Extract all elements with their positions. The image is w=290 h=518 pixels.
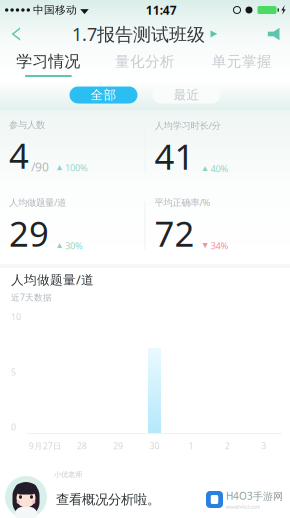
staticText: 小优老师 — [54, 470, 82, 479]
staticText: 40% — [210, 162, 228, 175]
button[interactable]: 全部 — [69, 86, 137, 103]
staticText: 单元掌握 — [212, 52, 272, 71]
staticText: 2 — [225, 440, 230, 452]
staticText: 全部 — [90, 87, 116, 103]
staticText: 中国移动 — [33, 3, 77, 17]
button[interactable]: Back — [0, 20, 32, 48]
staticText: 5 — [11, 366, 16, 378]
staticText: 量化分析 — [115, 52, 175, 71]
staticText: 最近 — [173, 87, 199, 103]
staticText: /90 — [31, 159, 49, 175]
staticText: 29 — [9, 210, 49, 257]
button[interactable]: 最近 — [152, 86, 220, 103]
staticText: 3 — [261, 440, 266, 452]
staticText: 人均学习时长/分 — [154, 119, 220, 132]
button[interactable]: Share — [258, 20, 290, 48]
staticText: 查看概况分析啦。 — [56, 491, 160, 508]
staticText: 0 — [11, 421, 16, 433]
staticText: 30 — [149, 440, 159, 452]
staticText: 100% — [65, 161, 88, 174]
staticText: H4O3手游网 — [226, 489, 283, 503]
staticText: 1.7报告测试班级 — [72, 22, 205, 46]
staticText: 28 — [77, 440, 87, 452]
staticText: 11:47 — [146, 2, 177, 18]
staticText: 41 — [154, 133, 194, 180]
staticText: 4 — [9, 132, 29, 179]
staticText: 平均正确率/% — [154, 196, 210, 209]
staticText: 9月27日 — [29, 440, 62, 452]
staticText: 30% — [65, 239, 83, 252]
staticText: 1 — [188, 440, 193, 452]
button[interactable]: 单元掌握 — [193, 48, 290, 80]
staticText: 人均做题量/道 — [9, 196, 66, 209]
staticText: www.h4o3.com — [226, 504, 260, 510]
staticText: 10 — [11, 311, 21, 323]
staticText: 学习情况 — [16, 51, 80, 72]
button[interactable]: 学习情况 — [0, 48, 97, 80]
staticText: 参与人数 — [9, 119, 45, 131]
staticText: 近7天数据 — [11, 291, 52, 303]
staticText: 人均做题量/道 — [11, 271, 94, 288]
staticText: 34% — [210, 239, 228, 252]
staticText: 29 — [113, 440, 123, 452]
button[interactable]: 量化分析 — [97, 48, 193, 80]
staticText: 72 — [154, 210, 194, 257]
